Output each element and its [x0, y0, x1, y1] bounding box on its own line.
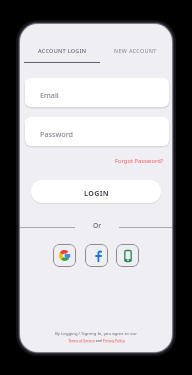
button[interactable]: Password — [25, 117, 169, 146]
button[interactable]: ACCOUNT LOGIN — [24, 42, 101, 58]
button[interactable]: Sign in with Google — [53, 244, 76, 267]
button[interactable]: Sign in with phone — [116, 244, 139, 267]
button[interactable]: Terms of Service and Privacy Policy — [68, 338, 125, 343]
staticText: By Logging / Signing In, you agree to ou… — [55, 330, 137, 336]
button[interactable]: Sign in with Facebook — [85, 244, 108, 267]
staticText: ACCOUNT LOGIN — [38, 47, 87, 54]
staticText: Or — [93, 221, 101, 230]
button[interactable]: LOGIN — [31, 180, 161, 203]
staticText: Password — [40, 129, 74, 139]
button[interactable]: Email — [25, 78, 169, 107]
staticText: Email — [40, 90, 59, 100]
button[interactable]: NEW ACCOUNT — [99, 42, 171, 58]
staticText: NEW ACCOUNT — [114, 47, 157, 54]
staticText: LOGIN — [84, 188, 109, 198]
button[interactable]: Forgot Password? — [104, 154, 164, 167]
staticText: Forgot Password? — [115, 157, 164, 165]
